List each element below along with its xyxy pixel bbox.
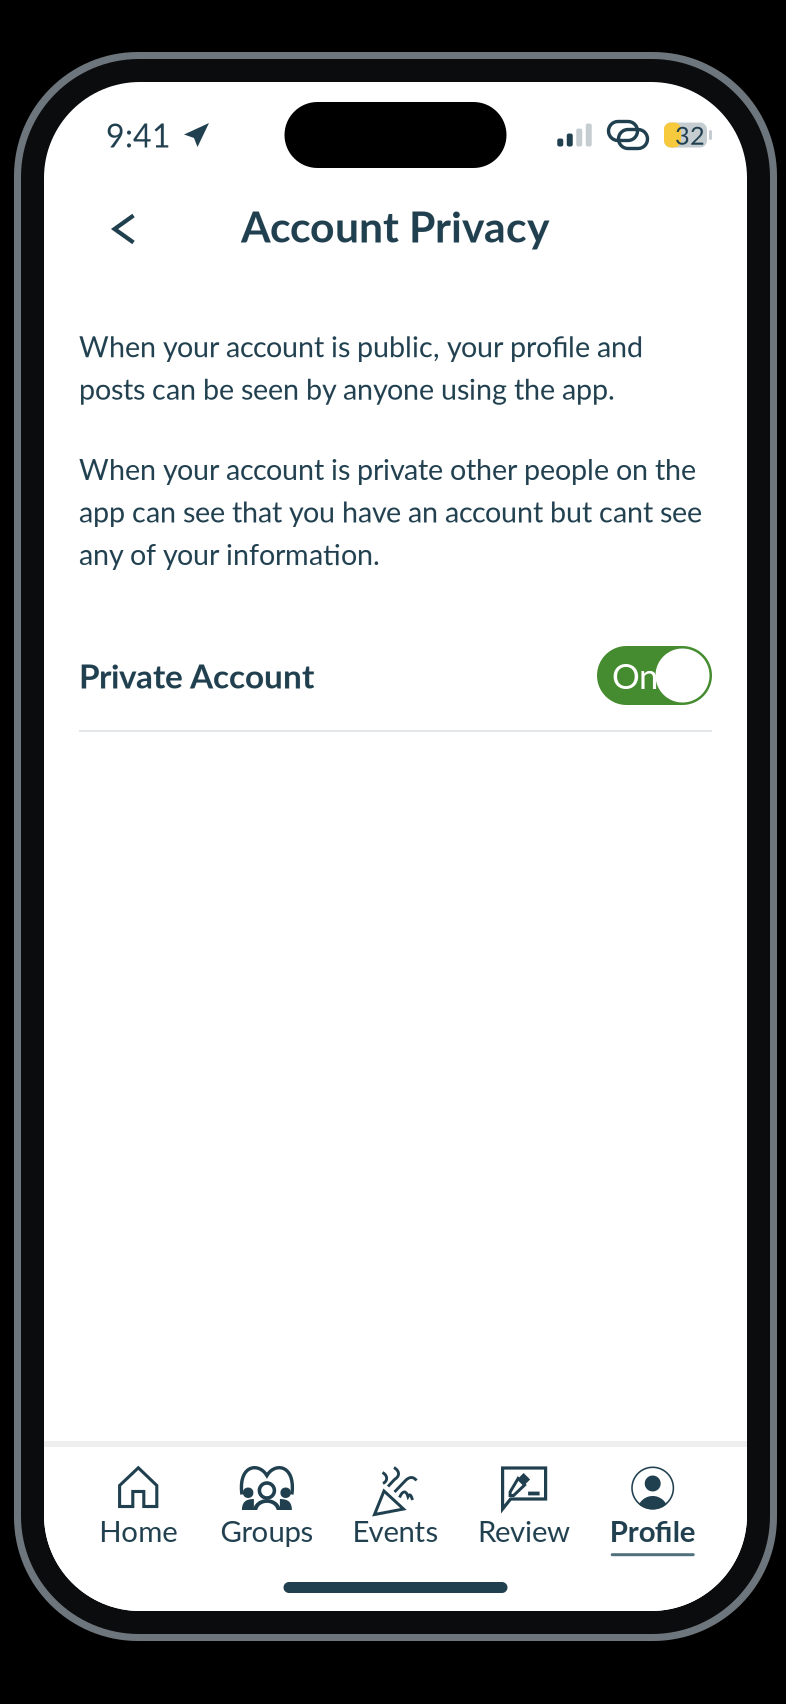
staticText: Profile <box>610 1513 696 1548</box>
staticText: Events <box>352 1513 438 1548</box>
staticText: Home <box>99 1513 177 1548</box>
button[interactable]: Events <box>331 1447 460 1579</box>
staticText: On <box>612 655 658 696</box>
staticText: 32 <box>675 120 705 150</box>
staticText: Account Privacy <box>241 200 550 252</box>
button[interactable]: Private Account <box>597 646 712 705</box>
button[interactable]: Back <box>89 194 159 258</box>
staticText: Private Account <box>79 655 314 695</box>
staticText: 9:41 <box>106 116 171 154</box>
button[interactable]: Profile <box>588 1447 717 1579</box>
staticText: When your account is public, your profil… <box>79 329 643 406</box>
staticText: Review <box>478 1513 570 1548</box>
staticText: Groups <box>220 1513 313 1548</box>
button[interactable]: Review <box>460 1447 588 1579</box>
button[interactable]: Groups <box>203 1447 331 1579</box>
staticText: When your account is private other peopl… <box>79 452 702 571</box>
button[interactable]: Home <box>74 1447 203 1579</box>
